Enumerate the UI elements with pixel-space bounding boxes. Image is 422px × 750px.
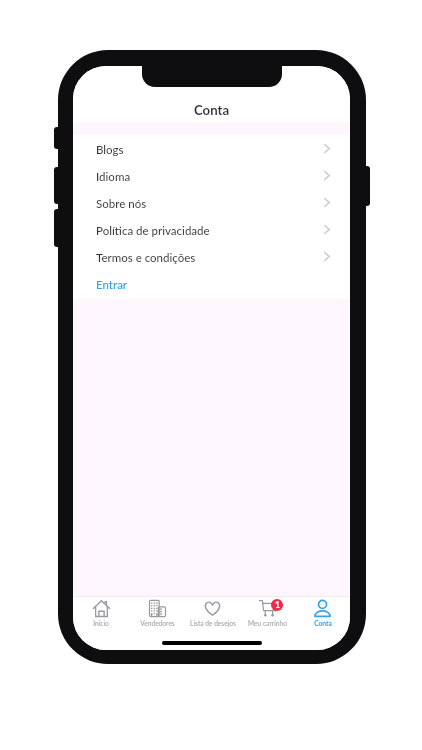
button[interactable]: Home	[73, 597, 129, 650]
staticText: Início	[93, 619, 109, 627]
staticText: Idioma	[96, 170, 131, 184]
staticText: Conta	[314, 619, 332, 627]
button[interactable]: Idioma	[73, 162, 350, 189]
staticText: Política de privacidade	[96, 224, 210, 238]
button[interactable]: Vendors	[129, 597, 185, 650]
button[interactable]: Entrar	[73, 270, 350, 297]
staticText: Meu carrinho	[248, 619, 287, 627]
button[interactable]: Termos e condições	[73, 243, 350, 270]
staticText: Lista de desejos	[190, 619, 236, 627]
staticText: Blogs	[96, 143, 124, 157]
button[interactable]: Wishlist	[185, 597, 240, 650]
staticText: Conta	[194, 102, 230, 118]
staticText: Entrar	[96, 278, 128, 292]
staticText: 1	[275, 600, 280, 610]
staticText: Vendedores	[140, 619, 175, 627]
button[interactable]: Account	[295, 597, 350, 650]
button[interactable]: Política de privacidade	[73, 216, 350, 243]
staticText: Sobre nós	[96, 197, 147, 211]
button[interactable]: Blogs	[73, 135, 350, 162]
staticText: Termos e condições	[96, 251, 196, 265]
button[interactable]: Sobre nós	[73, 189, 350, 216]
button[interactable]: Cart	[240, 597, 295, 650]
